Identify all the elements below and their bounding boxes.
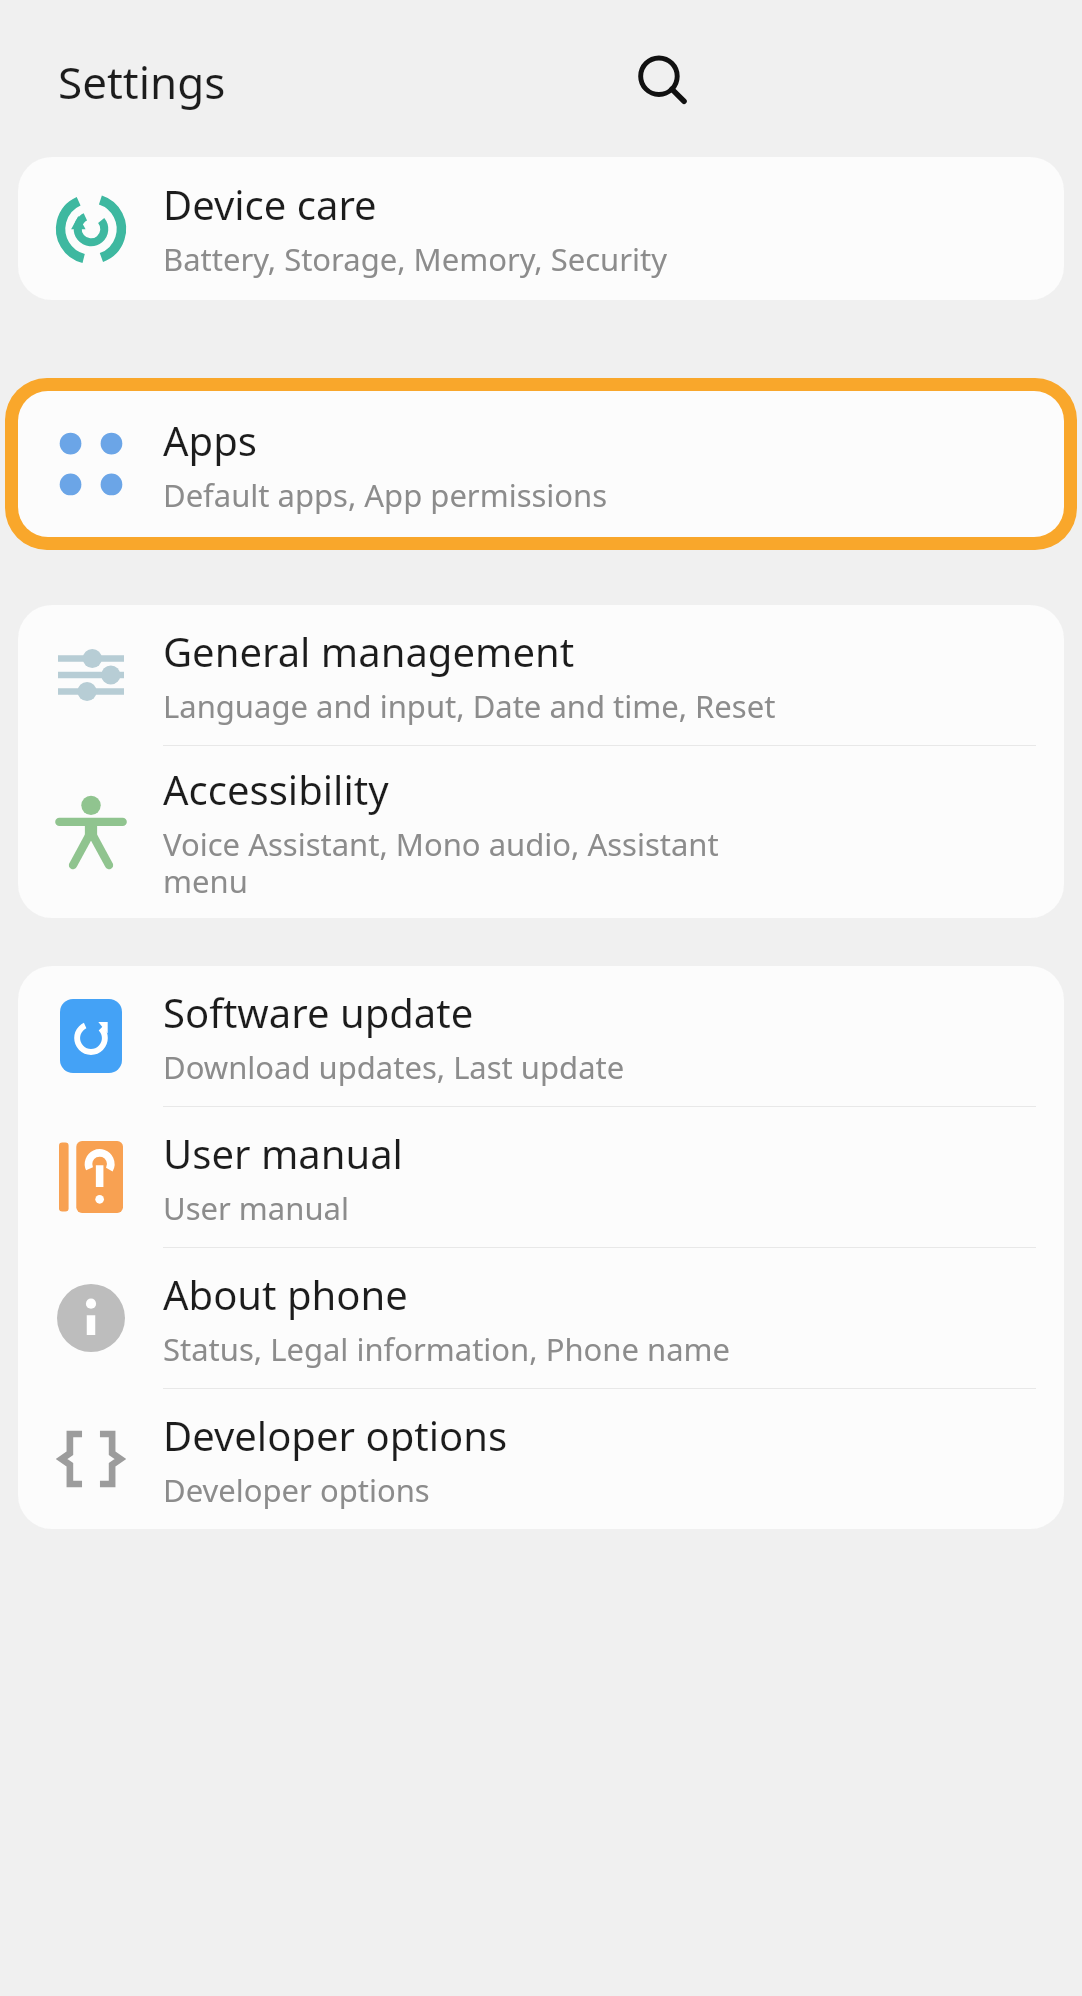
staticText: Developer options [163,1408,508,1462]
staticText: Apps [163,413,257,467]
staticText: User manual [163,1126,403,1180]
staticText: Language and input, Date and time, Reset [163,685,776,727]
button[interactable]: Software update [18,966,1064,1106]
staticText: Settings [58,52,226,112]
button[interactable]: Search [618,37,708,127]
staticText: Status, Legal information, Phone name [163,1328,731,1370]
staticText: General management [163,624,575,678]
staticText: Developer options [163,1469,430,1511]
staticText: Software update [163,985,474,1039]
button[interactable]: Apps [18,391,1064,537]
staticText: Voice Assistant, Mono audio, Assistant m… [163,823,719,902]
staticText: About phone [163,1267,408,1321]
button[interactable]: Developer options [18,1389,1064,1529]
staticText: Download updates, Last update [163,1046,625,1088]
staticText: Device care [163,177,377,231]
staticText: Default apps, App permissions [163,474,608,516]
button[interactable]: User manual [18,1107,1064,1247]
button[interactable]: Device care [18,157,1064,300]
staticText: Battery, Storage, Memory, Security [163,238,668,280]
button[interactable]: About phone [18,1248,1064,1388]
button[interactable]: Accessibility [18,746,1064,918]
staticText: Accessibility [163,762,389,816]
staticText: User manual [163,1187,349,1229]
button[interactable]: General management [18,605,1064,745]
